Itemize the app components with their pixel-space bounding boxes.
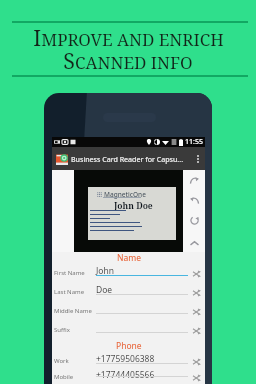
staticText: MagneticOne [104, 190, 146, 199]
staticText: +17744405566 [96, 369, 155, 381]
button[interactable]: First Name [52, 264, 205, 283]
staticText: Last Name [54, 288, 96, 296]
button[interactable]: Rotate right [187, 173, 201, 187]
staticText: Name [117, 252, 141, 264]
button[interactable]: Swap values [190, 264, 204, 283]
staticText: Doe [96, 284, 113, 296]
button[interactable]: Collapse [187, 236, 201, 250]
staticText: Suffix [54, 326, 96, 334]
button[interactable]: Swap values [190, 371, 204, 384]
staticText: Mobile [54, 373, 96, 381]
button[interactable]: Swap values [190, 352, 204, 371]
staticText: +17759506388 [96, 353, 155, 365]
button[interactable]: Last Name [52, 283, 205, 302]
staticText: 11:55 [185, 137, 203, 147]
button[interactable]: Work [52, 352, 205, 371]
button[interactable]: Swap values [190, 321, 204, 340]
staticText: Middle Name [54, 307, 96, 315]
button[interactable]: Reset [187, 213, 201, 227]
button[interactable]: Mobile [52, 371, 205, 384]
button[interactable]: Swap values [190, 283, 204, 302]
staticText: John Doe [114, 200, 153, 212]
staticText: Business Card Reader for Capsu... [71, 154, 184, 164]
staticText: SCANNED INFO [63, 46, 193, 75]
staticText: Phone [116, 340, 142, 352]
staticText: John [96, 265, 114, 277]
button[interactable]: Suffix [52, 321, 205, 340]
button[interactable]: More options [193, 151, 203, 167]
button[interactable]: Rotate left [187, 193, 201, 207]
button[interactable]: Middle Name [52, 302, 205, 321]
staticText: IMPROVE AND ENRICH [33, 23, 224, 52]
button[interactable]: Swap values [190, 302, 204, 321]
staticText: First Name [54, 269, 96, 277]
staticText: Work [54, 357, 96, 365]
